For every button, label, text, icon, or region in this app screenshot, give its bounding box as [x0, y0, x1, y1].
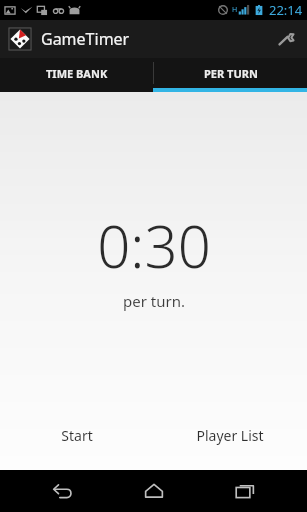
- button[interactable]: TIME BANK: [0, 58, 153, 88]
- staticText: Start: [61, 426, 93, 445]
- button[interactable]: GameTimer app icon: [8, 27, 130, 51]
- staticText: GameTimer: [41, 28, 130, 50]
- staticText: PER TURN: [204, 66, 258, 81]
- other: GameTimer app icon: [8, 27, 32, 51]
- button[interactable]: PER TURN: [154, 58, 307, 88]
- button[interactable]: Home: [124, 470, 184, 512]
- staticText: Player List: [196, 426, 264, 445]
- staticText: H: [232, 5, 238, 15]
- button[interactable]: Back: [32, 470, 92, 512]
- staticText: per turn.: [123, 291, 185, 311]
- button[interactable]: Settings: [265, 20, 307, 58]
- button[interactable]: Start: [0, 418, 153, 452]
- button[interactable]: Recent apps: [215, 470, 275, 512]
- staticText: 22:14: [269, 1, 303, 19]
- staticText: 0:30: [97, 206, 211, 285]
- button[interactable]: Player List: [153, 418, 307, 452]
- staticText: TIME BANK: [46, 66, 108, 81]
